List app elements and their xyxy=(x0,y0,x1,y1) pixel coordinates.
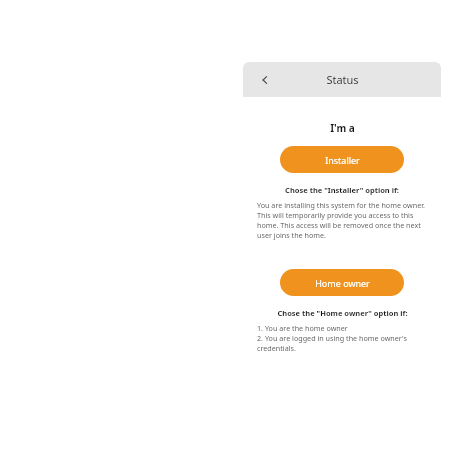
staticText: Status xyxy=(326,72,359,87)
button[interactable]: Installer xyxy=(280,146,404,173)
staticText: Chose the "Installer" option if: xyxy=(285,185,399,195)
button[interactable]: Home owner xyxy=(280,269,404,296)
staticText: 1. You are the home owner 2. You are log… xyxy=(257,323,427,353)
staticText: I'm a xyxy=(330,121,355,135)
staticText: Installer xyxy=(325,154,360,166)
button[interactable]: Back xyxy=(254,69,276,91)
staticText: You are installing this system for the h… xyxy=(257,200,427,240)
staticText: Home owner xyxy=(315,277,370,289)
staticText: Chose the "Home owner" option if: xyxy=(277,308,408,318)
